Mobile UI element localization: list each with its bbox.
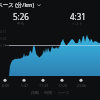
staticText: 5:04: [0, 37, 7, 41]
staticText: 5:47: [21, 83, 28, 88]
staticText: 5:57: [0, 44, 7, 48]
staticText: ペース (分/km): [0, 1, 35, 9]
staticText: ベスト: [72, 22, 83, 26]
staticText: 平均: [17, 22, 24, 26]
staticText: 距離 · 時間 · ペース: [31, 90, 70, 95]
staticText: 5:26: [13, 11, 29, 22]
button[interactable]: ペース (分/km): [0, 0, 100, 10]
staticText: 4:31: [70, 11, 86, 22]
staticText: 0:00: [2, 83, 9, 88]
button[interactable]: 4:31: [63, 11, 92, 26]
staticText: 4:11: [0, 30, 7, 34]
staticText: 17:20: [58, 83, 67, 88]
staticText: 11:33: [39, 83, 48, 88]
button[interactable]: 5:26: [6, 11, 35, 26]
staticText: 23:06: [77, 83, 86, 88]
